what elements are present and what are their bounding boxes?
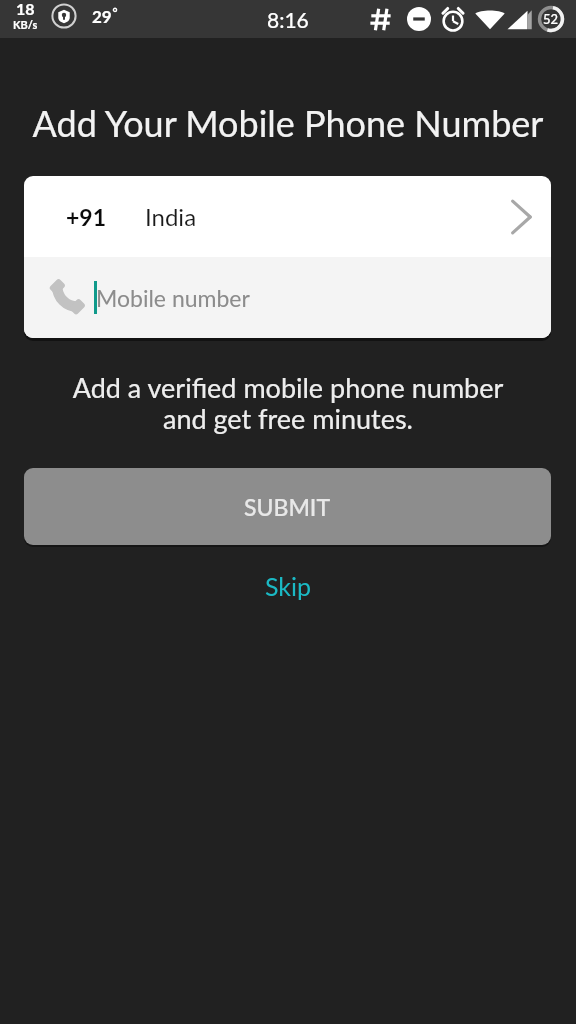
button[interactable]: Skip [247, 565, 330, 607]
staticText: 29 [92, 6, 112, 26]
staticText: SUBMIT [244, 493, 331, 521]
button[interactable]: SUBMIT [24, 468, 551, 545]
staticText: 18 [16, 0, 35, 18]
staticText: 8:16 [267, 7, 309, 32]
staticText: Mobile number [96, 284, 250, 312]
staticText: 52 [543, 11, 559, 27]
staticText: Skip [265, 571, 312, 601]
other: Select country [510, 199, 532, 235]
staticText: +91 [66, 203, 107, 231]
button[interactable]: +91 [24, 176, 551, 257]
staticText: Add a verified mobile phone number and g… [0, 371, 576, 435]
button[interactable]: Mobile number [24, 257, 551, 338]
staticText: India [145, 202, 197, 231]
other: Security [51, 3, 77, 29]
staticText: Add Your Mobile Phone Number [10, 101, 566, 144]
staticText: KB/s [13, 18, 38, 31]
